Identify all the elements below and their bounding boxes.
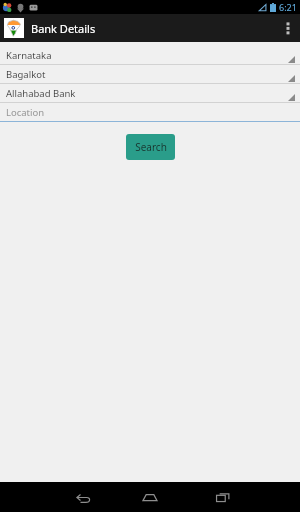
button[interactable]: Home: [138, 485, 162, 509]
button[interactable]: Recent apps: [211, 485, 235, 509]
staticText: Karnataka: [6, 49, 52, 62]
staticText: Allahabad Bank: [6, 87, 76, 100]
button[interactable]: More options: [276, 14, 300, 42]
button[interactable]: Karnataka: [0, 46, 300, 65]
staticText: Bagalkot: [6, 68, 46, 81]
button[interactable]: Search: [126, 134, 175, 160]
staticText: Bank Details: [31, 21, 96, 36]
staticText: Search: [135, 140, 167, 154]
staticText: Location: [6, 106, 45, 119]
button[interactable]: Location: [0, 103, 300, 122]
button[interactable]: Allahabad Bank: [0, 84, 300, 103]
button[interactable]: Back: [71, 485, 95, 509]
button[interactable]: Bagalkot: [0, 65, 300, 84]
staticText: 6:21: [279, 1, 297, 13]
